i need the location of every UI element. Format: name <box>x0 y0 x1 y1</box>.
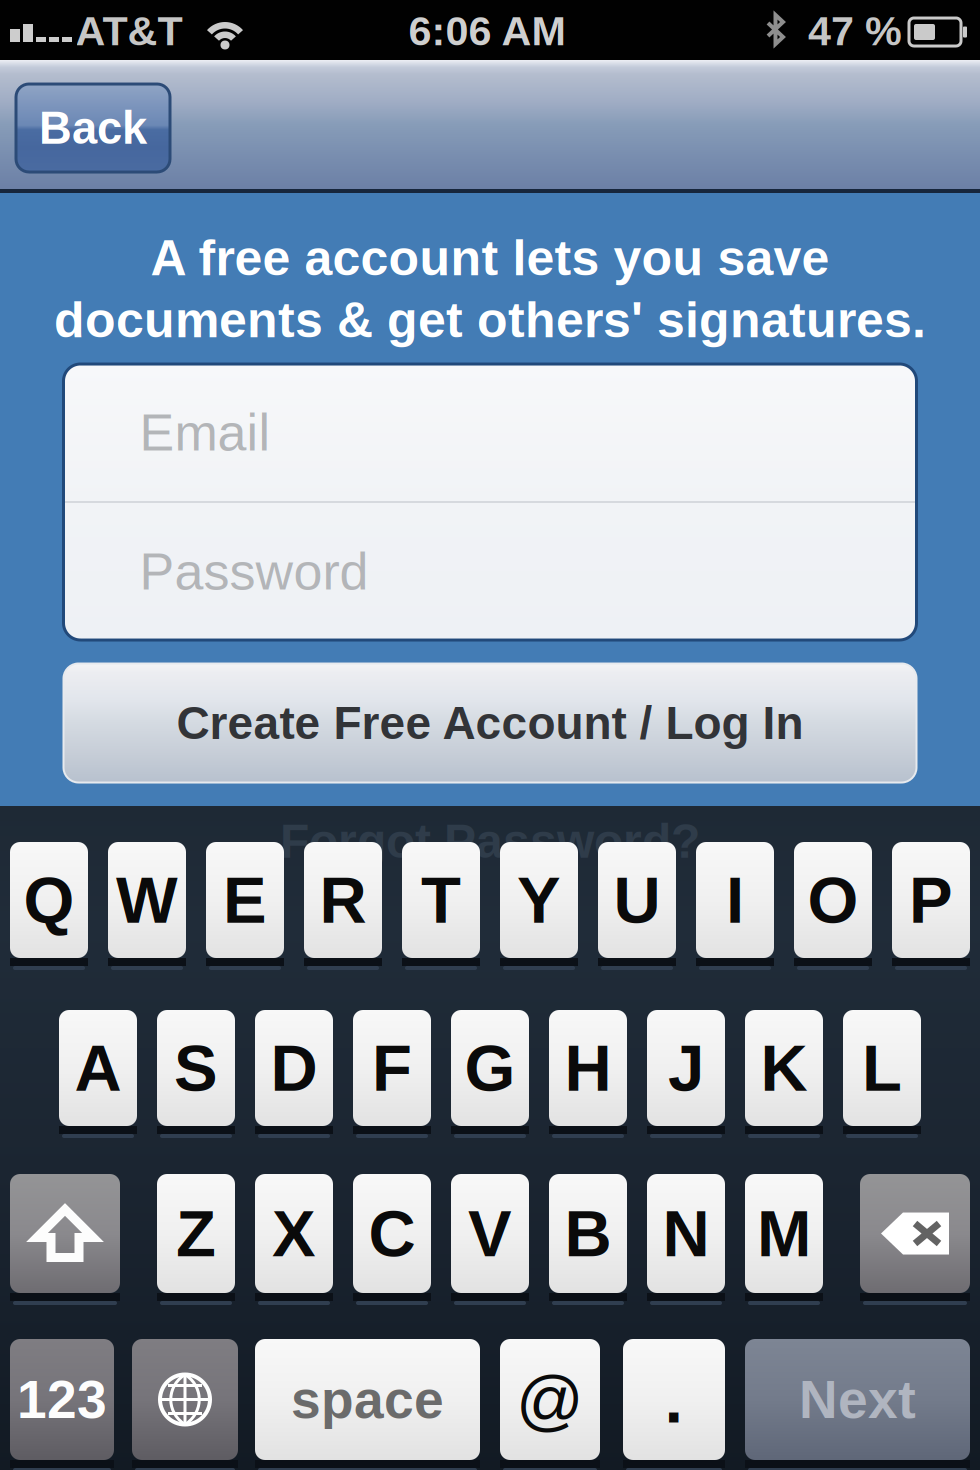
button[interactable]: B <box>549 1174 627 1305</box>
staticText: F <box>372 1031 412 1104</box>
staticText: Q <box>23 863 74 936</box>
staticText: B <box>564 1197 611 1270</box>
staticText: T <box>421 863 461 936</box>
staticText: @ <box>516 1362 584 1437</box>
button[interactable]: X <box>255 1174 333 1305</box>
staticText: Password <box>139 542 368 601</box>
button[interactable]: Password <box>63 503 916 640</box>
staticText: R <box>319 863 366 936</box>
staticText: A <box>74 1031 121 1104</box>
staticText: 6:06 AM <box>408 8 565 54</box>
button[interactable]: I <box>696 842 774 970</box>
button[interactable]: F <box>353 1010 431 1138</box>
staticText: Back <box>39 103 147 153</box>
staticText: U <box>613 863 660 936</box>
staticText: Z <box>176 1197 216 1270</box>
staticText: S <box>174 1031 218 1104</box>
staticText: O <box>807 863 858 936</box>
staticText: 47 % <box>808 8 902 54</box>
staticText: documents & get others' signatures. <box>54 292 926 348</box>
button[interactable]: P <box>892 842 970 970</box>
staticText: Email <box>139 403 270 462</box>
staticText: AT&T <box>75 8 182 54</box>
button[interactable]: U <box>598 842 676 970</box>
button[interactable]: Z <box>157 1174 235 1305</box>
staticText: A free account lets you save <box>150 230 829 286</box>
button[interactable]: E <box>206 842 284 970</box>
button[interactable]: W <box>108 842 186 970</box>
button[interactable]: Back <box>16 84 170 172</box>
staticText: W <box>116 863 178 936</box>
staticText: X <box>272 1197 316 1270</box>
button[interactable]: T <box>402 842 480 970</box>
staticText: . <box>664 1362 683 1437</box>
button[interactable]: M <box>745 1174 823 1305</box>
staticText: Y <box>517 863 561 936</box>
button[interactable]: @ <box>500 1339 600 1470</box>
button[interactable]: 123 <box>10 1339 114 1470</box>
button[interactable]: N <box>647 1174 725 1305</box>
staticText: Next <box>799 1370 916 1429</box>
staticText: K <box>760 1031 807 1104</box>
staticText: L <box>862 1031 902 1104</box>
button[interactable]: . <box>623 1339 725 1470</box>
button[interactable]: R <box>304 842 382 970</box>
button[interactable]: L <box>843 1010 921 1138</box>
button[interactable]: Forgot Password? <box>260 814 720 868</box>
staticText: P <box>909 863 953 936</box>
button[interactable]: A <box>59 1010 137 1138</box>
staticText: V <box>468 1197 512 1270</box>
button[interactable]: space <box>255 1339 480 1470</box>
staticText: Forgot Password? <box>280 814 700 868</box>
button[interactable]: Next <box>745 1339 970 1470</box>
button[interactable]: V <box>451 1174 529 1305</box>
button[interactable]: Shift <box>10 1174 120 1305</box>
button[interactable]: C <box>353 1174 431 1305</box>
button[interactable]: Email <box>63 364 916 501</box>
staticText: M <box>757 1197 811 1270</box>
staticText: N <box>662 1197 709 1270</box>
button[interactable]: G <box>451 1010 529 1138</box>
button[interactable]: Switch keyboard <box>132 1339 238 1470</box>
staticText: D <box>270 1031 317 1104</box>
staticText: J <box>668 1031 704 1104</box>
staticText: Create Free Account / Log In <box>176 697 803 749</box>
staticText: 123 <box>17 1370 107 1429</box>
button[interactable]: Delete <box>860 1174 970 1305</box>
button[interactable]: H <box>549 1010 627 1138</box>
button[interactable]: Q <box>10 842 88 970</box>
button[interactable]: O <box>794 842 872 970</box>
staticText: E <box>223 863 267 936</box>
staticText: C <box>368 1197 415 1270</box>
button[interactable]: K <box>745 1010 823 1138</box>
staticText: G <box>464 1031 515 1104</box>
button[interactable]: J <box>647 1010 725 1138</box>
button[interactable]: D <box>255 1010 333 1138</box>
staticText: space <box>291 1370 444 1429</box>
staticText: I <box>726 863 744 936</box>
button[interactable]: Create Free Account / Log In <box>63 663 916 782</box>
button[interactable]: Y <box>500 842 578 970</box>
staticText: H <box>564 1031 611 1104</box>
button[interactable]: S <box>157 1010 235 1138</box>
